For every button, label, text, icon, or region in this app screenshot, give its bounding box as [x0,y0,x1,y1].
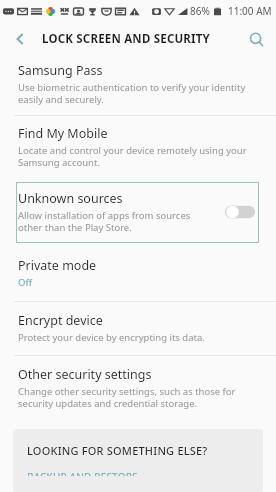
staticText: LOOKING FOR SOMETHING ELSE? [27,443,208,458]
staticText: 86% [190,4,210,18]
staticText: BACKUP AND RESTORE [27,470,138,476]
button[interactable]: Samsung Pass [0,55,276,115]
button[interactable]: Back [7,26,33,52]
button[interactable]: Encrypt device [0,302,276,355]
button[interactable]: Other security settings [0,356,276,420]
staticText: Use biometric authentication to verify y… [18,81,246,106]
staticText: Allow installation of apps from sources … [18,209,191,234]
staticText: Locate and control your device remotely … [18,144,247,169]
staticText: Off [18,276,32,289]
staticText: Find My Mobile [18,125,108,142]
button[interactable]: Private mode [0,247,276,301]
staticText: Unknown sources [18,190,123,207]
staticText: LOCK SCREEN AND SECURITY [42,31,211,47]
button[interactable]: Find My Mobile [0,116,276,178]
staticText: Other security settings [18,366,152,383]
button[interactable]: BACKUP AND RESTORE [27,470,249,476]
button[interactable]: Unknown sources [16,182,259,243]
staticText: Private mode [18,257,97,274]
staticText: Samsung Pass [18,62,103,79]
staticText: Encrypt device [18,312,103,329]
staticText: Protect your device by encrypting its da… [18,331,205,344]
staticText: Change other security settings, such as … [18,385,236,410]
button[interactable]: Search [243,26,269,52]
staticText: 11:00 AM [228,4,272,18]
button[interactable]: Unknown sources toggle [225,204,255,220]
